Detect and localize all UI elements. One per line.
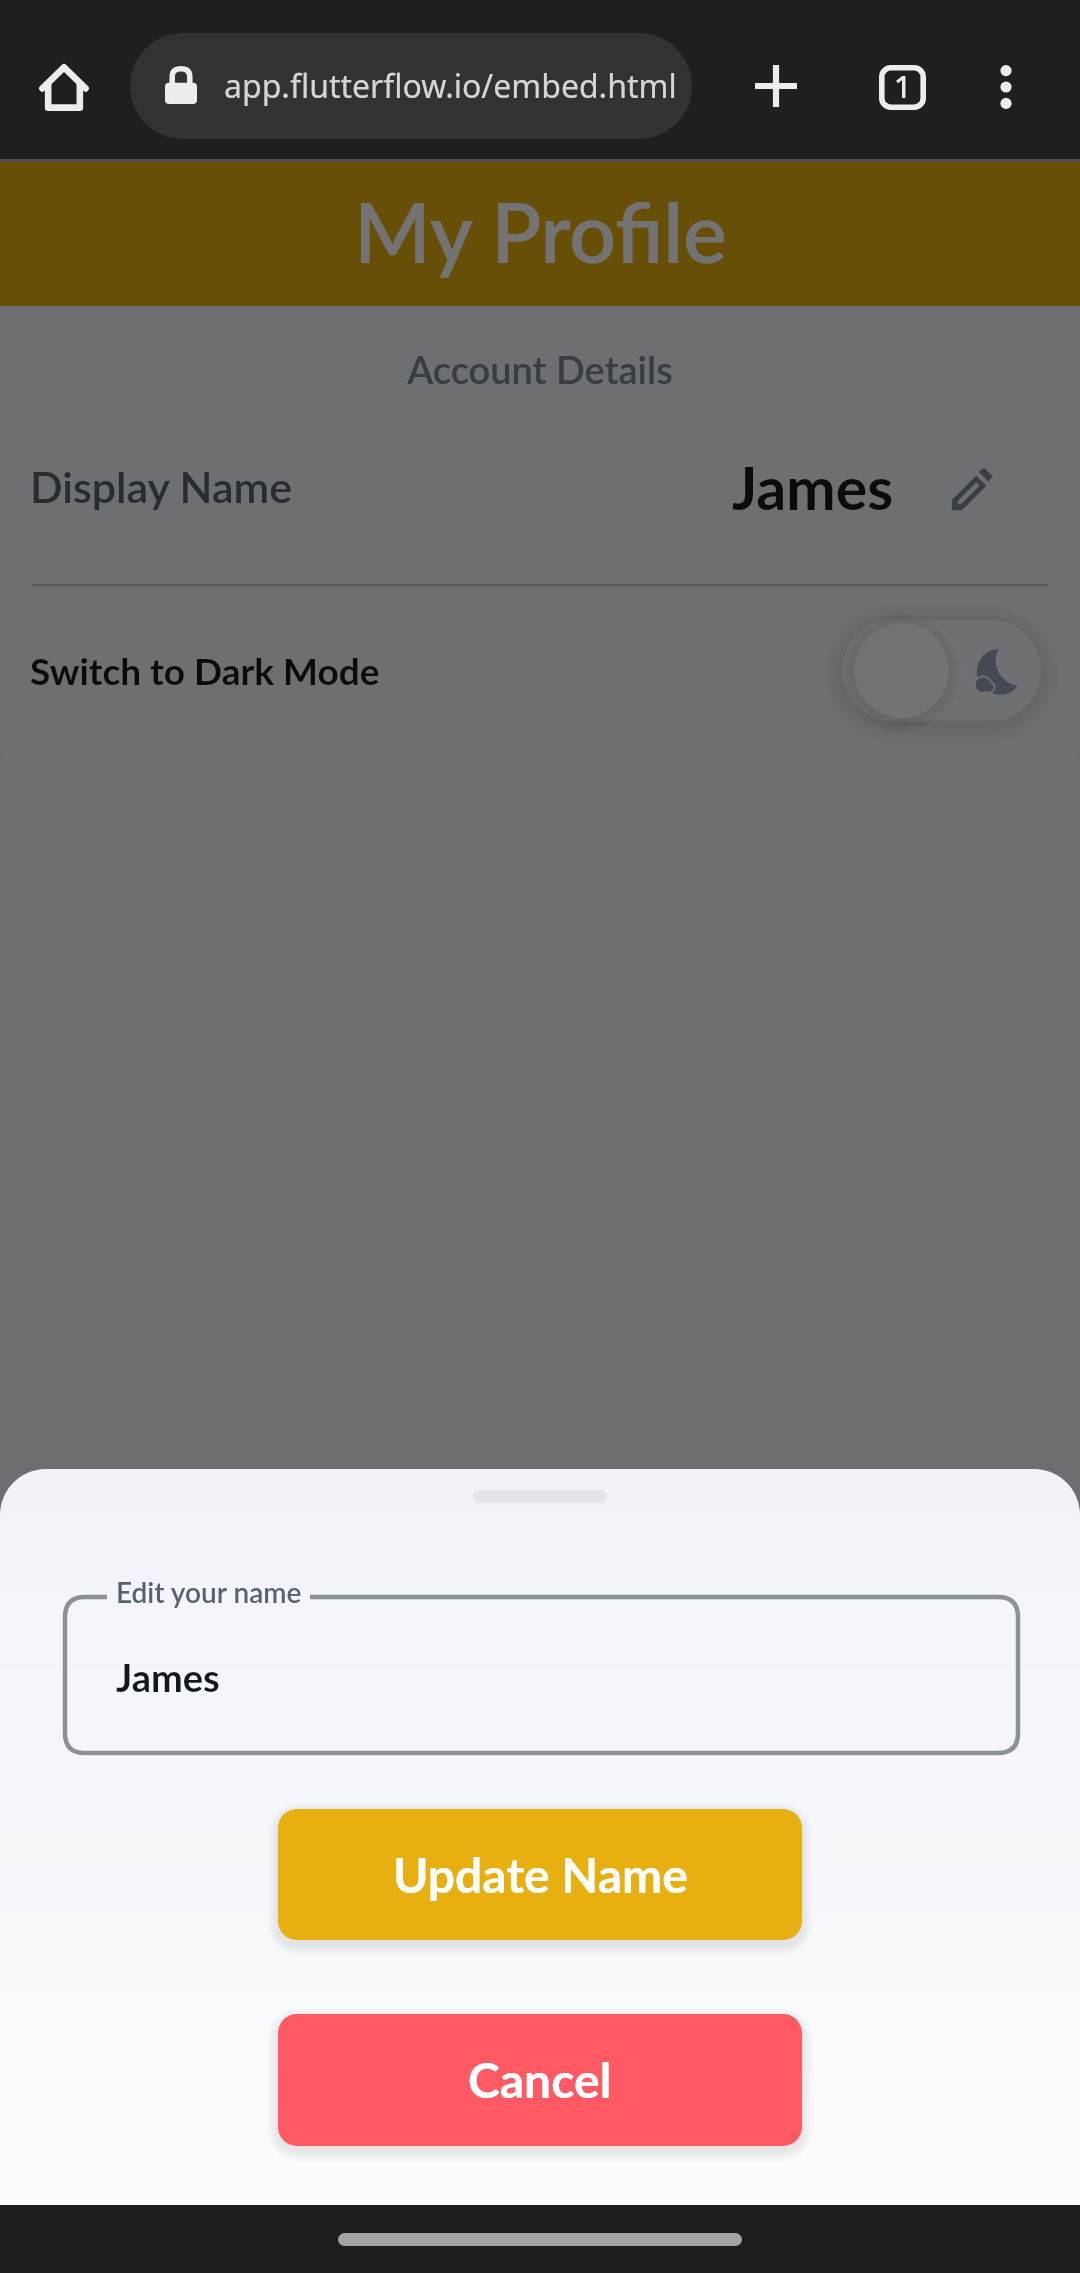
button[interactable]: Home <box>31 54 96 119</box>
staticText: James <box>732 452 894 523</box>
staticText: app.flutterflow.io/embed.html <box>224 64 677 108</box>
button[interactable]: app.flutterflow.io/embed.html <box>130 33 692 139</box>
staticText: Edit your name <box>116 1575 302 1609</box>
staticText: Update Name <box>393 1846 688 1904</box>
button[interactable]: Tabs <box>866 51 938 123</box>
button[interactable]: New tab <box>740 50 812 122</box>
button[interactable]: Switch to Dark Mode <box>834 612 1049 729</box>
button[interactable]: More options <box>970 51 1042 123</box>
button[interactable]: Cancel <box>278 2014 802 2146</box>
staticText: My Profile <box>354 182 727 280</box>
staticText: Account Details <box>0 346 1080 392</box>
button[interactable]: Edit display name <box>944 462 1000 518</box>
staticText: James <box>116 1654 220 1700</box>
staticText: Switch to Dark Mode <box>30 648 380 692</box>
staticText: Display Name <box>30 461 293 513</box>
staticText: 1 <box>894 66 912 107</box>
button[interactable]: Update Name <box>278 1809 802 1940</box>
staticText: Cancel <box>468 2051 612 2109</box>
